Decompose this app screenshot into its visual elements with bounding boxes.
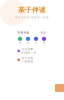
staticText: 每天十分钟 陪孩子一起读 bbox=[15, 16, 49, 19]
staticText: 亲子任务 一起画画 bbox=[21, 56, 33, 63]
staticText: 今日故事 小熊的一天 bbox=[21, 48, 36, 54]
staticText: 更多 bbox=[40, 31, 46, 34]
button[interactable]: 做游戏 bbox=[40, 37, 48, 43]
button[interactable]: 读绘本 bbox=[24, 37, 32, 43]
staticText: 做游戏 bbox=[42, 42, 45, 43]
staticText: 亲子伴读 bbox=[18, 6, 46, 14]
button[interactable]: 今日故事 小熊的一天 bbox=[14, 46, 49, 55]
staticText: 认汉字 bbox=[34, 42, 37, 43]
staticText: 读绘本 bbox=[26, 42, 29, 43]
staticText: 听故事 bbox=[18, 42, 21, 43]
button[interactable]: 亲子任务 一起画画 bbox=[14, 55, 49, 64]
button[interactable]: 听故事 bbox=[16, 37, 24, 43]
button[interactable]: 认汉字 bbox=[32, 37, 40, 43]
staticText: 常用功能 bbox=[17, 31, 29, 34]
